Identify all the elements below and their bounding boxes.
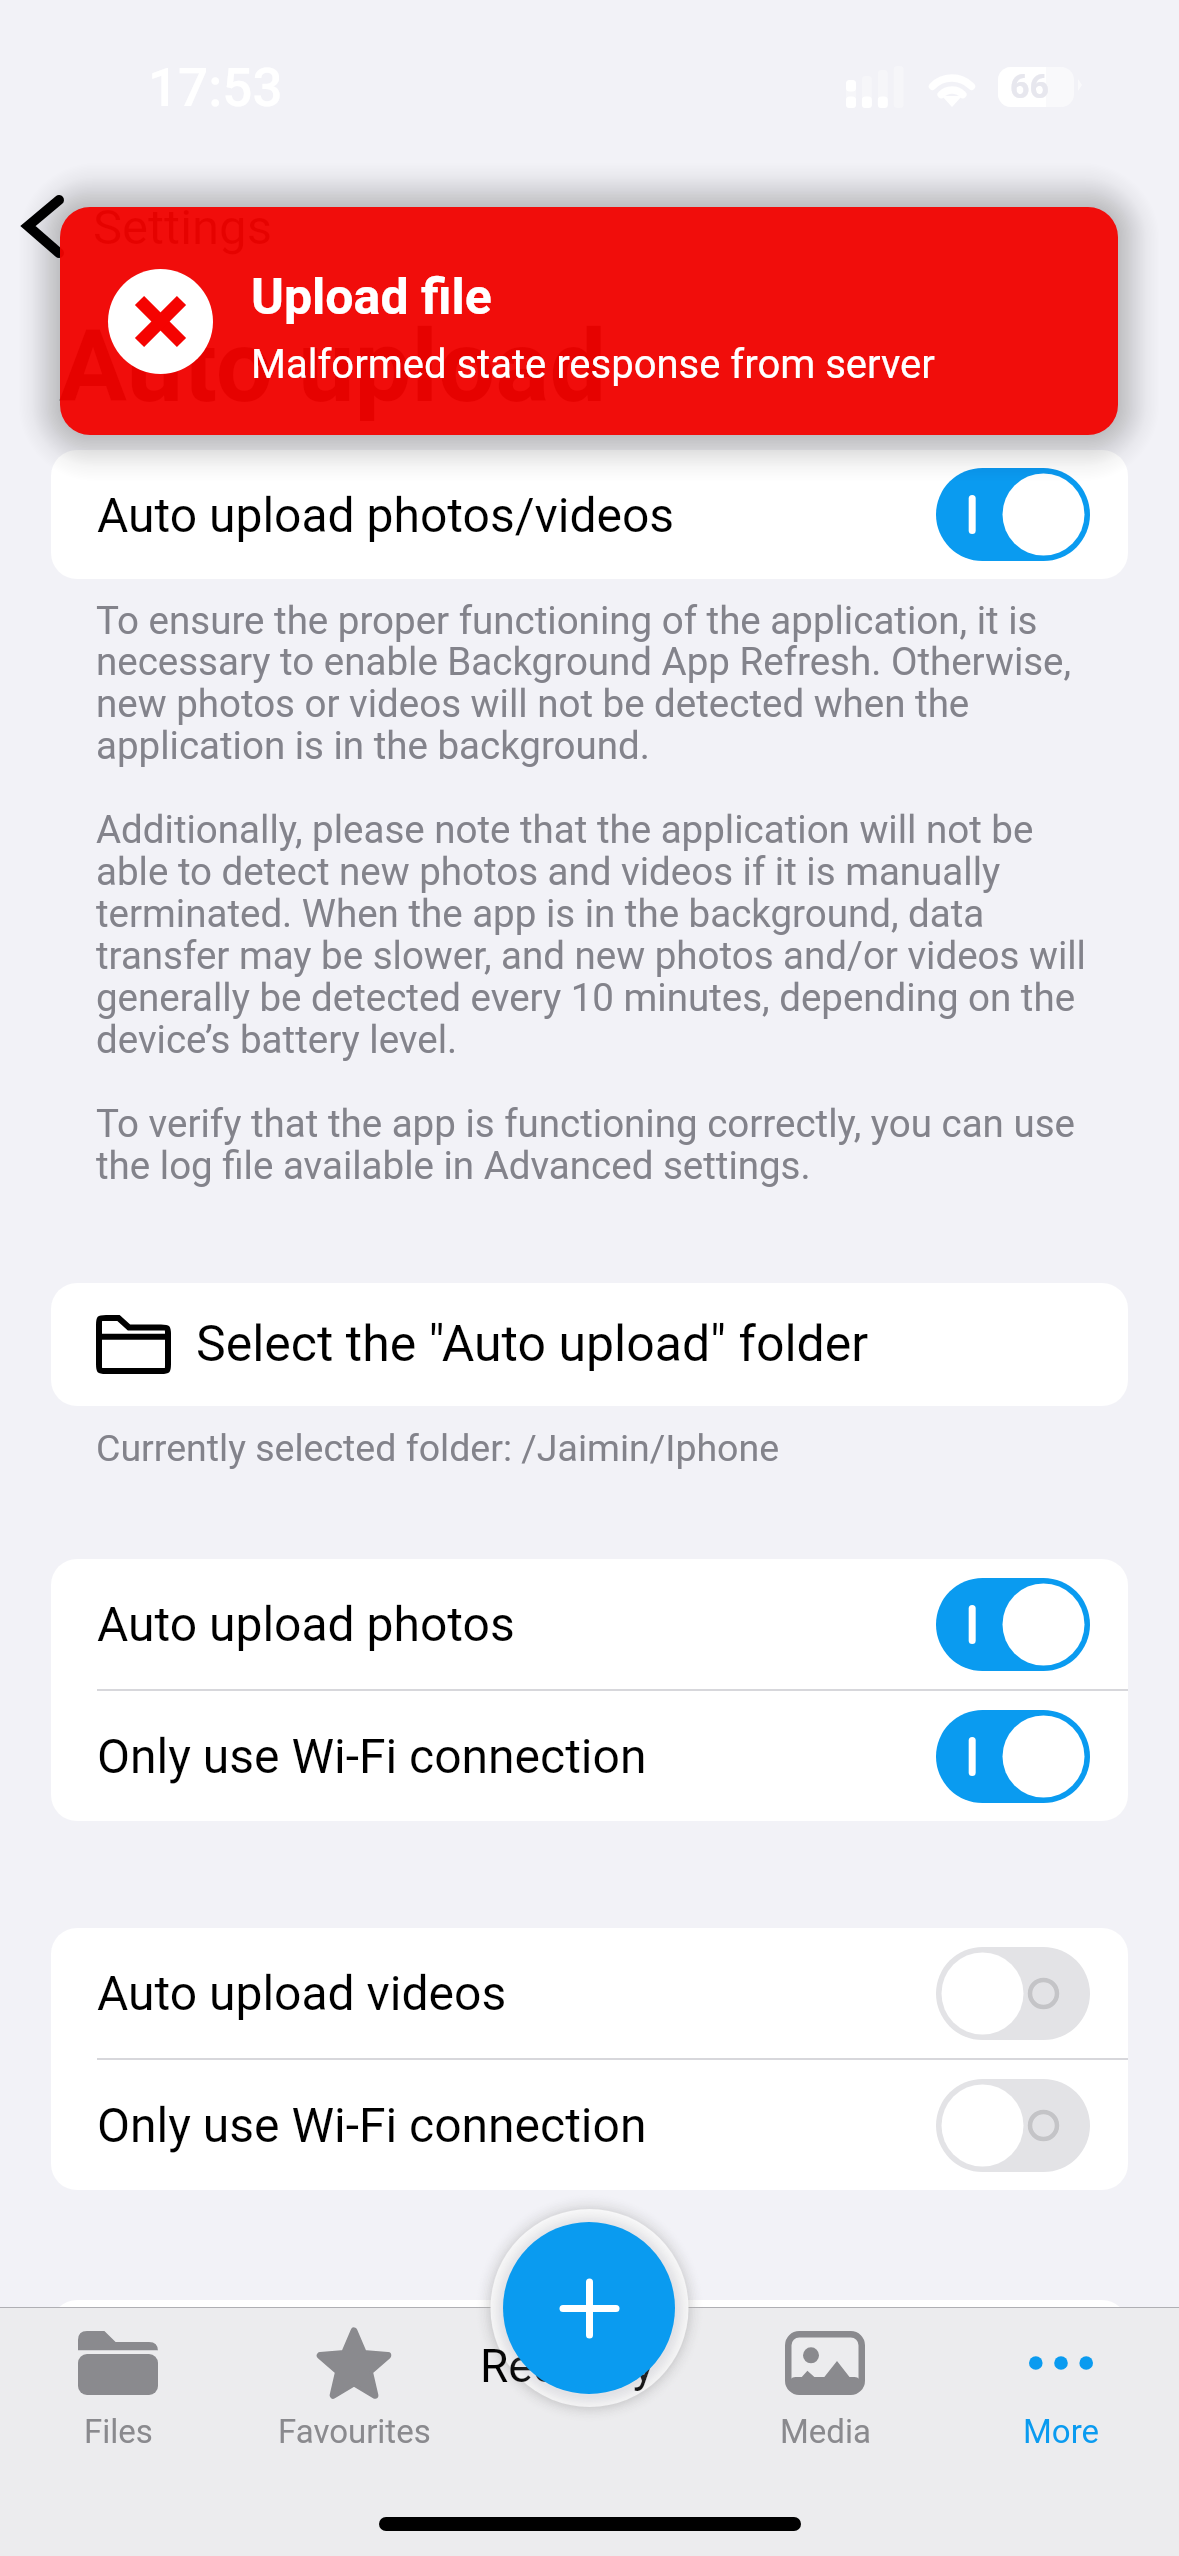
button[interactable]: Auto upload photos xyxy=(51,1559,1128,1689)
staticText: Currently selected folder: /Jaimin/Iphon… xyxy=(96,1426,780,1470)
staticText: Recently xyxy=(480,2339,655,2393)
staticText: Favourites xyxy=(278,2412,431,2451)
staticText: Auto upload xyxy=(59,307,607,425)
staticText: Auto upload photos xyxy=(97,1596,515,1652)
staticText: To ensure the proper functioning of the … xyxy=(96,598,1106,1189)
button[interactable]: Upload file xyxy=(60,207,1118,435)
staticText: Upload file xyxy=(251,268,492,327)
button[interactable]: Auto upload photos/videos xyxy=(51,450,1128,579)
button[interactable]: Back xyxy=(8,186,88,282)
staticText: More xyxy=(1023,2412,1100,2451)
button[interactable]: Auto upload videos xyxy=(51,1928,1128,2058)
button[interactable]: Favourites xyxy=(236,2322,472,2462)
staticText: 17:53 xyxy=(148,57,283,119)
button[interactable]: Only use Wi-Fi connection xyxy=(51,1691,1128,1821)
staticText: Only use Wi-Fi connection xyxy=(97,2097,647,2153)
button[interactable]: Only use Wi-Fi connection xyxy=(51,2060,1128,2190)
button[interactable]: Files xyxy=(0,2322,236,2462)
staticText: Files xyxy=(84,2412,153,2451)
button[interactable]: Recently xyxy=(472,2322,708,2462)
staticText: Settings xyxy=(93,199,272,256)
button[interactable]: Select the "Auto upload" folder xyxy=(51,1283,1128,1406)
staticText: Only use Wi-Fi connection xyxy=(97,1728,647,1784)
staticText: Auto upload photos/videos xyxy=(97,487,675,543)
staticText: Malformed state response from server xyxy=(251,341,935,388)
button[interactable]: More xyxy=(943,2322,1179,2462)
staticText: Media xyxy=(780,2412,871,2451)
button[interactable]: Media xyxy=(707,2322,943,2462)
staticText: 66 xyxy=(1010,66,1050,106)
staticText: Select the "Auto upload" folder xyxy=(196,1315,869,1374)
button[interactable]: Add xyxy=(503,2222,675,2394)
staticText: Auto upload videos xyxy=(97,1965,507,2021)
